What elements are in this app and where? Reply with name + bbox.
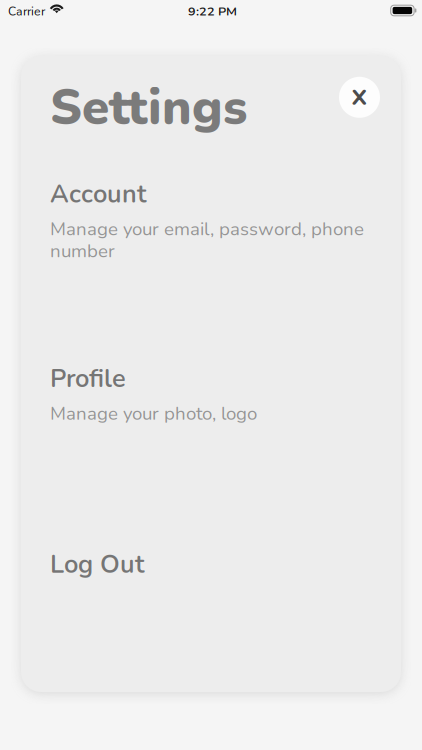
staticText: Account	[50, 177, 146, 211]
button[interactable]: Account	[50, 177, 372, 265]
staticText: Log Out	[50, 547, 144, 582]
staticText: Profile	[50, 361, 126, 396]
button[interactable]: Profile	[50, 361, 372, 425]
staticText: X	[351, 82, 367, 113]
staticText: Settings	[50, 74, 247, 141]
button[interactable]: Log Out	[50, 547, 372, 577]
staticText: Manage your email, password, phone numbe…	[50, 218, 364, 262]
staticText: Manage your photo, logo	[50, 403, 257, 425]
staticText: 9:22 PM	[188, 3, 237, 20]
staticText: Carrier	[8, 3, 45, 20]
button[interactable]: Close	[339, 77, 380, 118]
